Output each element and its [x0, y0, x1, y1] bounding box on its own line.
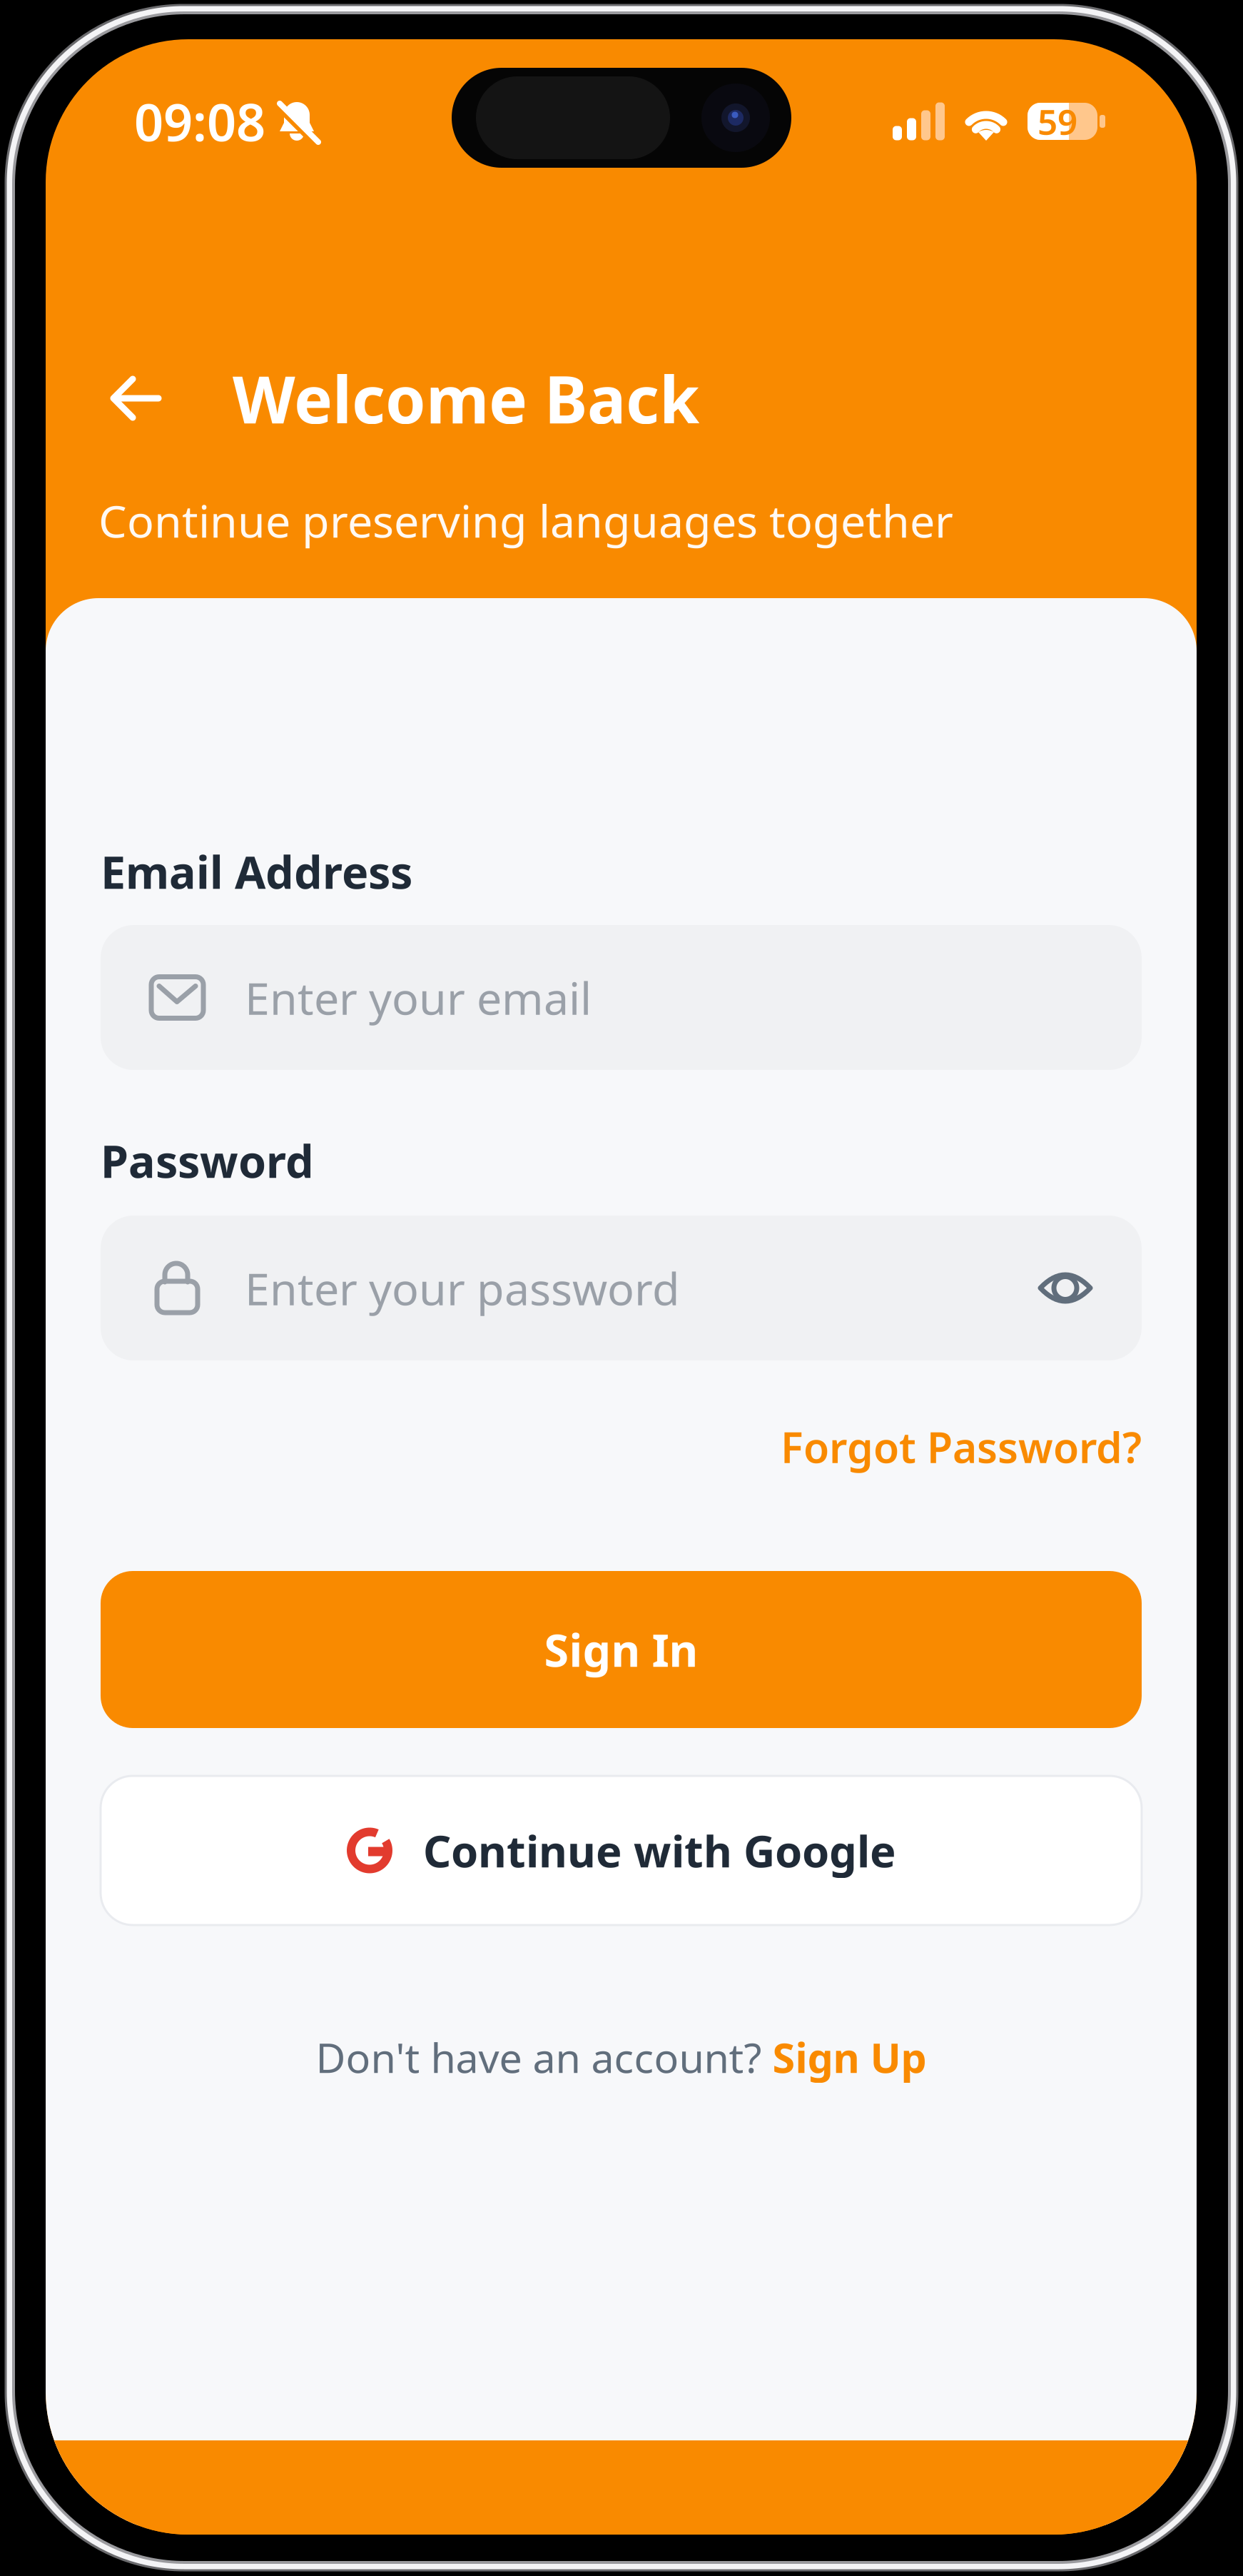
button[interactable]: Sign In [101, 1571, 1142, 1728]
staticText: Forgot Password? [781, 1419, 1142, 1475]
staticText: Continue preserving languages together [98, 491, 953, 550]
staticText: Password [101, 1131, 314, 1190]
staticText: Continue with Google [423, 1821, 896, 1880]
button[interactable]: Welcome Back [111, 364, 1152, 433]
staticText: Welcome Back [233, 355, 699, 441]
staticText: Sign In [544, 1620, 698, 1679]
staticText: Enter your email [245, 968, 592, 1027]
staticText: Enter your password [245, 1258, 680, 1318]
button[interactable]: Continue with Google [101, 1776, 1142, 1925]
staticText: Don't have an account? [316, 2030, 772, 2084]
staticText: 09:08 [134, 87, 265, 155]
button[interactable]: Don't have an account? [101, 2032, 1142, 2082]
staticText: Sign Up [772, 2030, 927, 2084]
staticText: 59 [1037, 98, 1077, 145]
staticText: Email Address [101, 842, 412, 901]
button[interactable]: Show password [1037, 1216, 1093, 1360]
button[interactable]: Forgot Password? [101, 1421, 1142, 1473]
